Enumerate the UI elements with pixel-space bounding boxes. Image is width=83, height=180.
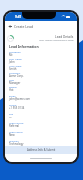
staticText: Last Name (9, 64, 22, 67)
staticText: Company (9, 71, 21, 74)
staticText: Email (9, 94, 16, 97)
staticText: Hot (9, 88, 14, 92)
button[interactable]: Back (7, 23, 13, 29)
staticText: +1 555 0134 (9, 106, 25, 110)
staticText: First Name (9, 57, 22, 60)
staticText: Technology (9, 142, 24, 146)
staticText: Referral (9, 124, 19, 128)
staticText: Lead Source (9, 121, 24, 124)
staticText: New (9, 133, 15, 137)
button[interactable]: Phone (9, 103, 74, 110)
staticText: Mr. (9, 53, 13, 57)
button[interactable]: Last Name (9, 64, 74, 71)
staticText: Title (9, 78, 14, 81)
staticText: — (9, 115, 12, 119)
button[interactable]: Salutation (9, 50, 74, 57)
button[interactable]: Lead Status (9, 130, 74, 137)
staticText: Next: Address Information in Detail (39, 39, 74, 42)
staticText: Smith (9, 67, 17, 71)
staticText: Lead Status (9, 130, 23, 133)
button[interactable]: Email (9, 94, 74, 101)
button[interactable]: Rating (9, 85, 74, 92)
staticText: Rating (9, 85, 17, 88)
button[interactable]: Company (9, 71, 74, 78)
staticText: john@acme.com (9, 97, 31, 101)
button[interactable]: First Name (9, 57, 74, 64)
staticText: Acme Corp. (9, 74, 24, 78)
button[interactable]: Industry (9, 139, 74, 146)
staticText: Create Lead (14, 24, 33, 29)
staticText: Address Info & Submit (27, 148, 56, 152)
staticText: Phone (9, 103, 17, 106)
staticText: John (9, 60, 15, 64)
staticText: 1/2 (9, 37, 13, 40)
staticText: Fax (9, 112, 14, 115)
staticText: Industry (9, 139, 19, 142)
staticText: Salutation (9, 50, 21, 53)
staticText: 9:41 (15, 15, 22, 19)
button[interactable]: Address Info & Submit (5, 146, 77, 154)
button[interactable]: Lead Source (9, 121, 74, 128)
staticText: Lead Information (9, 44, 39, 49)
button[interactable]: Fax (9, 112, 74, 119)
button[interactable]: Title (9, 78, 74, 85)
staticText: Manager (9, 81, 21, 85)
staticText: Lead Details (55, 35, 74, 39)
